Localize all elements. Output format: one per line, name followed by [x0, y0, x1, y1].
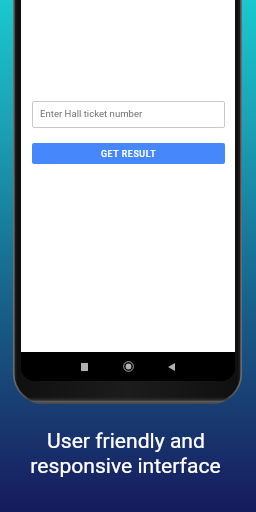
button[interactable]: GET RESULT [32, 143, 225, 164]
staticText: GET RESULT [101, 149, 157, 159]
button[interactable]: Recent apps [62, 352, 106, 381]
button[interactable]: Home [106, 352, 150, 381]
button[interactable]: Back [150, 352, 193, 381]
staticText: responsive interface [30, 453, 221, 478]
button[interactable]: Enter Hall ticket number [32, 101, 225, 128]
staticText: User friendly and [47, 428, 205, 453]
staticText: Enter Hall ticket number [40, 108, 143, 119]
